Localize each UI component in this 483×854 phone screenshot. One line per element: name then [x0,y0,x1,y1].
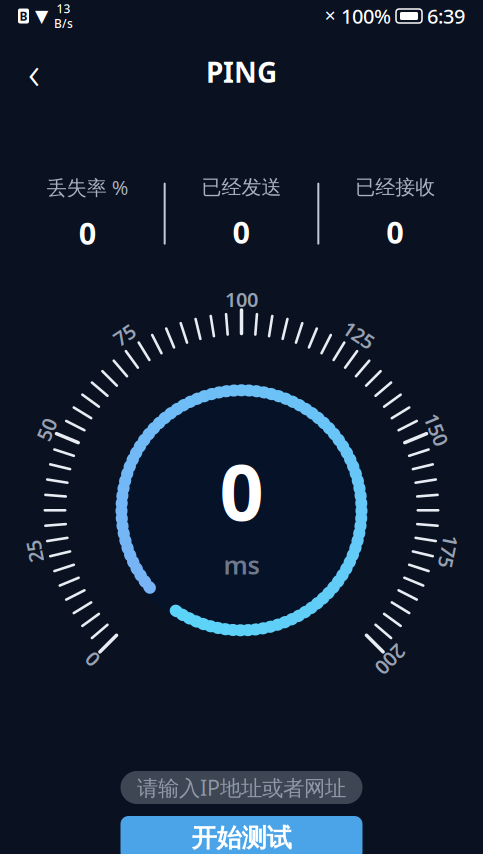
button[interactable]: 开始测试 [120,816,362,854]
button[interactable]: Back [10,48,58,96]
staticText: 0 [219,439,263,542]
staticText: 0 [236,286,247,313]
staticText: B [19,8,27,24]
staticText: 150 [225,286,258,313]
staticText: 100 [225,286,258,313]
staticText: 100% [341,3,391,29]
staticText: 0 [232,212,250,252]
staticText: 已经接收 [355,175,435,200]
staticText: 0 [79,213,97,253]
staticText: 200 [225,286,258,313]
staticText: 开始测试 [191,822,291,853]
staticText: 已经发送 [201,175,281,200]
staticText: 75 [230,286,252,313]
staticText: ms [223,548,259,581]
button[interactable]: 请输入IP地址或者网址 [120,771,362,804]
staticText: 请输入IP地址或者网址 [137,773,346,802]
staticText: B/s [54,15,73,31]
staticText: 25 [230,286,252,313]
staticText: 175 [225,286,258,313]
staticText: 0 [386,212,404,252]
staticText: ✕ [324,8,336,24]
staticText: 丢失率 % [47,174,129,201]
staticText: ‹ [28,42,40,102]
staticText: 125 [225,286,258,313]
staticText: 6:39 [427,3,465,29]
staticText: 13 [56,1,70,16]
staticText: PING [206,53,277,91]
staticText: ▼ [35,6,48,26]
staticText: 50 [230,286,252,313]
